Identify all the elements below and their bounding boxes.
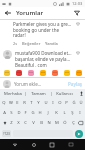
button[interactable]: C <box>22 119 29 127</box>
button[interactable]: Beğen <box>75 21 81 27</box>
button[interactable]: J <box>44 109 52 117</box>
button[interactable]: Paylaş <box>68 81 82 87</box>
button[interactable]: Y <box>35 99 42 107</box>
button[interactable]: Emoji <box>63 69 70 76</box>
button[interactable]: Emoji <box>51 69 58 76</box>
button[interactable]: Emoji <box>3 69 10 76</box>
staticText: N <box>47 120 51 126</box>
button[interactable]: I <box>76 109 84 117</box>
staticText: Ğ <box>72 100 76 106</box>
button[interactable]: Yorum ekle... <box>14 81 66 87</box>
button[interactable]: Merhaba <box>0 89 25 98</box>
button[interactable]: N <box>45 119 53 127</box>
button[interactable]: Geri <box>3 8 13 18</box>
staticText: R <box>23 100 26 106</box>
button[interactable]: Ü <box>77 99 84 107</box>
staticText: Ü <box>79 100 83 106</box>
staticText: Y <box>37 100 40 106</box>
staticText: G <box>31 110 35 116</box>
staticText: Paylaş <box>68 81 82 87</box>
button[interactable]: mustafa900 Download et çok <box>0 50 85 67</box>
staticText: P <box>65 100 68 106</box>
staticText: H <box>38 110 42 116</box>
button[interactable]: K <box>52 109 60 117</box>
button[interactable]: E <box>14 99 21 107</box>
button[interactable]: F <box>22 109 29 117</box>
button[interactable]: Kullanıcı <box>52 89 77 98</box>
staticText: Yorumlar <box>16 9 44 17</box>
staticText: Yorum ekle... <box>14 81 42 87</box>
staticText: Z <box>10 120 13 126</box>
button[interactable]: V <box>29 119 37 127</box>
button[interactable]: Beğen <box>75 50 81 56</box>
staticText: Ş <box>71 110 74 116</box>
staticText: Q <box>2 100 6 106</box>
button[interactable]: Emoji <box>75 69 82 76</box>
button[interactable]: Parkmeler gives you a great solution to <box>0 20 85 46</box>
button[interactable]: X <box>15 119 22 127</box>
staticText: 2s <box>13 41 18 46</box>
staticText: Ç <box>72 120 75 126</box>
staticText: O <box>58 100 62 106</box>
button[interactable]: H <box>36 109 44 117</box>
button[interactable]: Z <box>8 119 15 127</box>
button[interactable]: Emoji <box>15 69 22 76</box>
staticText: I <box>79 110 81 116</box>
staticText: Ö <box>63 120 67 126</box>
staticText: X <box>17 120 20 126</box>
button[interactable]: Geri <box>10 140 19 149</box>
button[interactable]: I <box>49 99 56 107</box>
staticText: Kullanıcı <box>56 91 73 97</box>
staticText: W <box>9 100 13 106</box>
button[interactable]: Filtrele <box>72 8 82 18</box>
staticText: ?123 <box>3 132 10 136</box>
button[interactable]: Klavyeyi gizle <box>66 140 75 149</box>
button[interactable]: Gönder <box>75 130 83 138</box>
button[interactable]: P <box>63 99 70 107</box>
button[interactable]: ?123 <box>2 130 11 137</box>
button[interactable]: Ş <box>68 109 76 117</box>
button[interactable]: Tamam <box>26 89 51 98</box>
staticText: I <box>52 100 54 106</box>
button[interactable]: D <box>15 109 22 117</box>
button[interactable]: B <box>37 119 45 127</box>
button[interactable]: R <box>21 99 28 107</box>
staticText: C <box>24 120 27 126</box>
staticText: U <box>44 100 48 106</box>
staticText: M <box>55 120 59 126</box>
button[interactable]: G <box>29 109 36 117</box>
staticText: B <box>40 120 43 126</box>
button[interactable]: Beğeniler <box>22 41 41 46</box>
button[interactable]: Ana ekran <box>29 140 38 149</box>
button[interactable]: S <box>8 109 15 117</box>
button[interactable]: O <box>56 99 63 107</box>
button[interactable]: Ğ <box>70 99 77 107</box>
staticText: booking go under the radar! <box>13 27 72 39</box>
staticText: Tamam <box>31 91 46 97</box>
staticText: V <box>32 120 35 126</box>
button[interactable]: Emoji <box>27 69 34 76</box>
button[interactable]: L <box>60 109 68 117</box>
button[interactable]: Yanıtla <box>45 41 58 46</box>
staticText: D <box>17 110 21 116</box>
staticText: T <box>30 100 33 106</box>
staticText: J <box>47 110 49 116</box>
button[interactable]: W <box>7 99 14 107</box>
button[interactable]: Son kullanılanlar <box>47 140 56 149</box>
button[interactable]: T <box>28 99 35 107</box>
button[interactable]: Ö <box>61 119 69 127</box>
staticText: A <box>3 110 6 116</box>
staticText: mustafa900 Download et çok <box>15 50 72 56</box>
button[interactable]: Shift <box>1 119 8 127</box>
staticText: Beğeniler <box>22 41 41 46</box>
button[interactable]: A <box>1 109 8 117</box>
staticText: Merhaba <box>4 91 22 97</box>
button[interactable]: Emoji <box>39 69 46 76</box>
button[interactable]: M <box>53 119 61 127</box>
button[interactable]: Sil <box>77 119 84 127</box>
button[interactable]: Sesle yaz <box>77 89 85 98</box>
button[interactable]: U <box>42 99 49 107</box>
button[interactable]: Ç <box>69 119 77 127</box>
button[interactable]: Q <box>1 99 7 107</box>
